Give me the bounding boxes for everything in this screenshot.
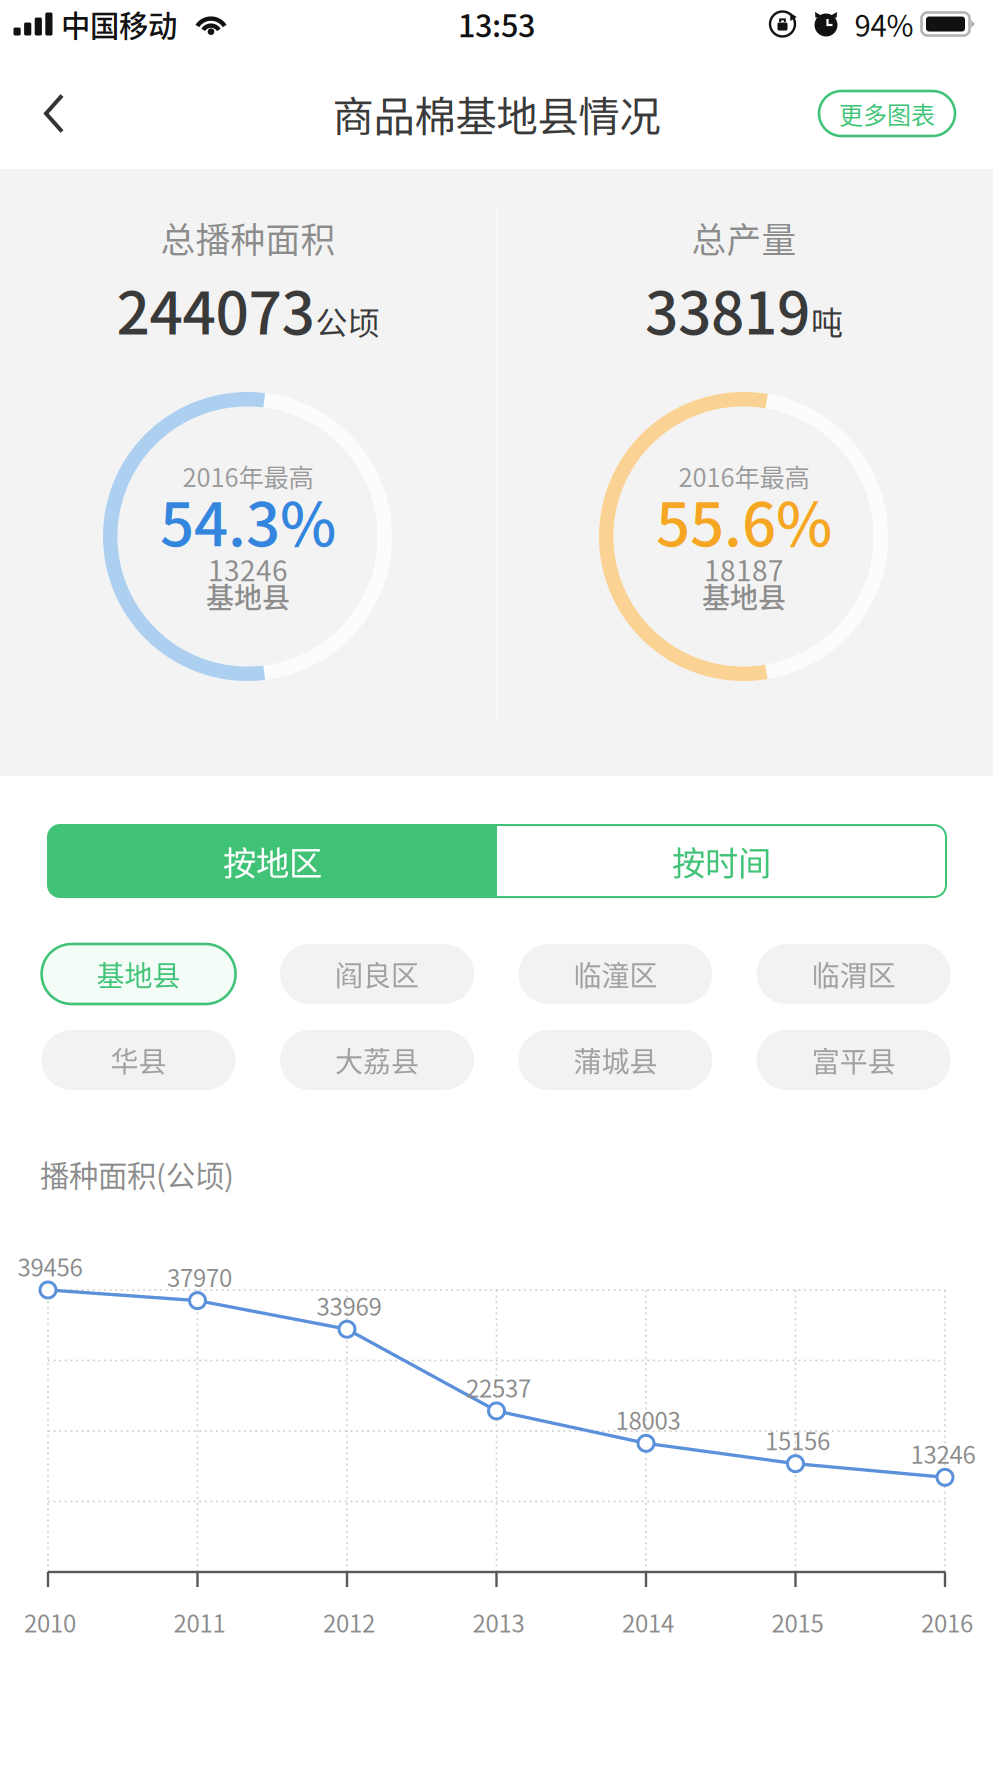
staticText: 33819: [645, 266, 810, 351]
button[interactable]: 阎良区: [280, 944, 474, 1004]
staticText: 基地县: [206, 576, 290, 616]
staticText: 18003: [615, 1402, 680, 1437]
staticText: 2011: [173, 1605, 225, 1639]
staticText: 2015: [771, 1605, 823, 1639]
staticText: 39456: [17, 1249, 82, 1283]
staticText: 富平县: [812, 1040, 896, 1080]
button[interactable]: 更多图表: [819, 91, 955, 136]
staticText: 公顷: [315, 297, 379, 344]
staticText: 总播种面积: [160, 213, 335, 263]
staticText: 2016年最高: [678, 458, 809, 494]
staticText: 37970: [167, 1259, 232, 1294]
staticText: 2012: [323, 1605, 375, 1639]
button[interactable]: 富平县: [757, 1030, 951, 1090]
staticText: 2013: [472, 1605, 524, 1639]
button[interactable]: Back: [0, 65, 94, 161]
staticText: 13:53: [458, 2, 535, 46]
staticText: 94%: [854, 3, 913, 45]
button[interactable]: 按地区: [48, 825, 497, 897]
staticText: 18187: [704, 549, 784, 589]
staticText: 13246: [910, 1436, 975, 1471]
staticText: 55.6%: [656, 477, 832, 563]
button[interactable]: 大荔县: [280, 1030, 474, 1090]
staticText: 按时间: [672, 837, 771, 885]
staticText: 大荔县: [335, 1040, 419, 1080]
staticText: 更多图表: [839, 96, 935, 131]
staticText: 基地县: [97, 954, 181, 994]
button[interactable]: 基地县: [42, 944, 236, 1004]
staticText: 总产量: [691, 213, 796, 263]
staticText: 244073: [116, 266, 314, 351]
staticText: 2016年最高: [182, 458, 313, 494]
button[interactable]: 按时间: [497, 825, 946, 897]
staticText: 2016: [921, 1605, 973, 1639]
staticText: 2014: [622, 1605, 674, 1639]
staticText: 临渭区: [812, 954, 896, 994]
staticText: 播种面积(公顷): [40, 1153, 234, 1195]
staticText: 33969: [316, 1288, 381, 1323]
button[interactable]: 临渭区: [757, 944, 951, 1004]
staticText: 临潼区: [573, 954, 657, 994]
button[interactable]: 华县: [42, 1030, 236, 1090]
button[interactable]: 临潼区: [518, 944, 712, 1004]
staticText: 中国移动: [61, 3, 177, 45]
staticText: 吨: [811, 297, 843, 344]
staticText: 按地区: [223, 837, 322, 885]
staticText: 2010: [24, 1605, 76, 1639]
staticText: 阎良区: [335, 954, 419, 994]
staticText: 13246: [208, 549, 288, 589]
button[interactable]: 蒲城县: [518, 1030, 712, 1090]
staticText: 蒲城县: [573, 1040, 657, 1080]
staticText: 54.3%: [160, 477, 336, 563]
staticText: 商品棉基地县情况: [332, 84, 660, 143]
staticText: 华县: [111, 1040, 167, 1080]
staticText: 15156: [765, 1422, 830, 1457]
staticText: 22537: [466, 1369, 531, 1404]
staticText: 基地县: [702, 576, 786, 616]
